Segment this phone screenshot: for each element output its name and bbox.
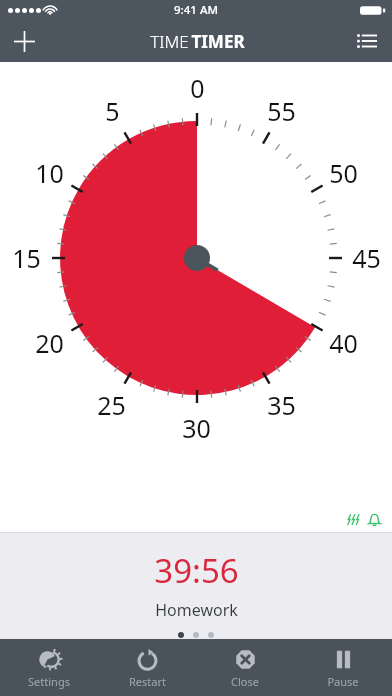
staticText: 30: [182, 411, 211, 445]
staticText: TIME: [148, 30, 191, 53]
staticText: Close: [231, 674, 259, 689]
staticText: 0: [190, 71, 205, 105]
staticText: 10: [35, 156, 64, 190]
staticText: TIMER: [191, 30, 245, 53]
button[interactable]: Close: [196, 639, 294, 696]
staticText: Settings: [28, 674, 70, 689]
staticText: 50: [329, 156, 358, 190]
button[interactable]: Settings: [0, 639, 98, 696]
staticText: 45: [352, 241, 381, 275]
button[interactable]: Pause: [294, 639, 392, 696]
staticText: 25: [97, 388, 126, 422]
button[interactable]: Timer list: [342, 20, 392, 62]
button[interactable]: Add timer: [0, 20, 48, 62]
button[interactable]: Restart: [98, 639, 196, 696]
staticText: 39:56: [154, 548, 239, 593]
staticText: 5: [105, 94, 120, 128]
staticText: 15: [12, 241, 41, 275]
staticText: Pause: [327, 674, 359, 689]
staticText: Restart: [129, 674, 166, 689]
staticText: Homework: [155, 599, 238, 621]
staticText: 55: [267, 94, 296, 128]
staticText: 40: [329, 326, 358, 360]
staticText: 35: [267, 388, 296, 422]
staticText: 9:41 AM: [174, 2, 218, 18]
staticText: 20: [35, 326, 64, 360]
